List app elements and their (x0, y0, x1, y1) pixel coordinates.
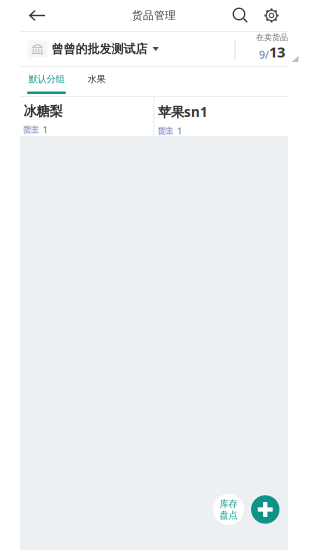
button[interactable]: Search (226, 0, 255, 31)
staticText: 货品管理 (132, 9, 176, 22)
staticText: 苹果sn1 (158, 103, 208, 121)
staticText: 9/ (259, 47, 269, 62)
staticText: 1 (177, 125, 182, 137)
staticText: 冰糖梨 (23, 103, 62, 119)
button[interactable]: Add (251, 495, 279, 524)
button[interactable]: Back (20, 0, 54, 31)
button[interactable]: 库存 (213, 494, 244, 525)
button[interactable]: 默认分组 (27, 67, 66, 96)
staticText: 库存 (219, 498, 237, 509)
staticText: 曾曾的批发测试店 (51, 42, 147, 56)
button[interactable]: 曾曾的批发测试店 (19, 32, 234, 66)
staticText: 水果 (87, 73, 105, 85)
staticText: 1 (42, 123, 47, 136)
button[interactable]: 水果 (84, 67, 109, 96)
button[interactable]: Settings (255, 0, 288, 31)
staticText: 13 (269, 42, 285, 62)
button[interactable]: 冰糖梨 (20, 97, 153, 136)
staticText: 货主 (157, 126, 173, 136)
staticText: 默认分组 (28, 73, 64, 85)
button[interactable]: 苹果sn1 (154, 97, 288, 136)
staticText: 货主 (23, 125, 39, 134)
staticText: 在卖货品 (256, 32, 288, 42)
staticText: 盘点 (219, 509, 237, 521)
button[interactable]: 在卖货品 (235, 32, 288, 66)
